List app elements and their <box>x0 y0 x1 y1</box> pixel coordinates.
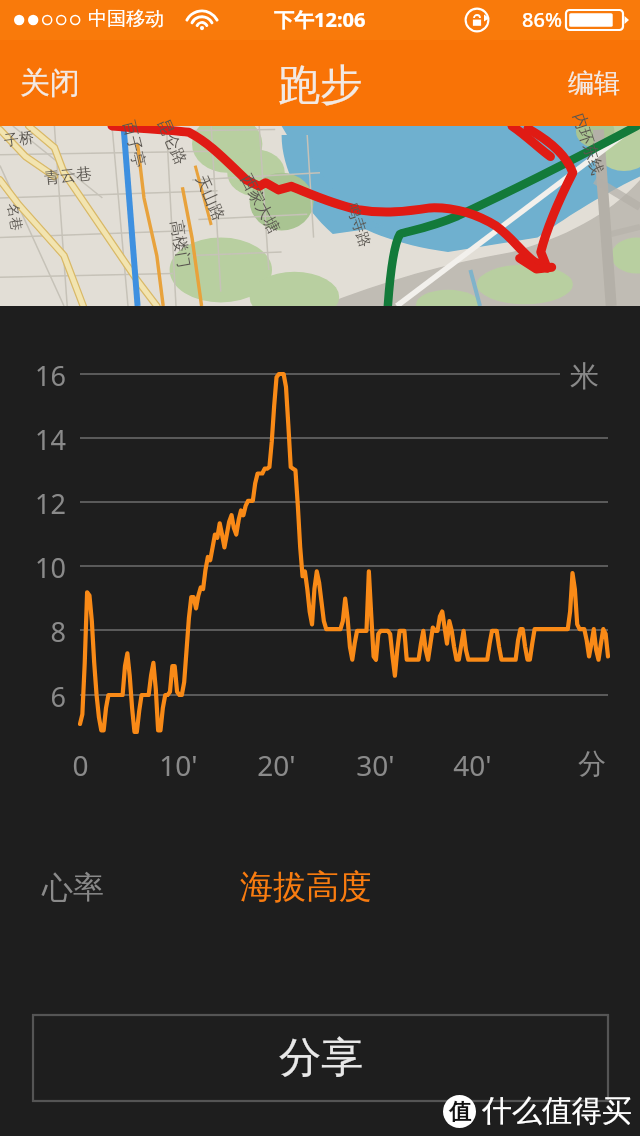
staticText: 0 <box>72 746 89 784</box>
staticText: 百子亭 <box>118 118 149 170</box>
staticText: 高楼门 <box>166 219 194 269</box>
staticText: 关闭 <box>20 64 80 102</box>
staticText: 中国移动 <box>88 7 164 31</box>
staticText: 名巷 <box>3 202 25 232</box>
button[interactable]: 海拔高度 <box>232 860 380 914</box>
staticText: 海拔高度 <box>240 866 372 908</box>
staticText: 西家大塘 <box>236 171 284 237</box>
staticText: 昆仑路 <box>153 116 191 168</box>
button[interactable]: Route map <box>0 126 640 306</box>
staticText: 14 <box>35 421 66 458</box>
staticText: 鸣寺路 <box>342 201 374 250</box>
staticText: 子桥 <box>3 128 35 151</box>
staticText: 下午12:06 <box>274 6 366 33</box>
staticText: 青云巷 <box>43 163 93 188</box>
staticText: 内环东线 <box>569 110 607 177</box>
staticText: 什么值得买 <box>482 1092 632 1130</box>
button[interactable]: 分享 <box>33 1015 608 1101</box>
staticText: 6 <box>50 678 66 715</box>
staticText: 跑步 <box>278 59 362 112</box>
staticText: 40' <box>453 746 492 784</box>
staticText: 12 <box>35 485 66 522</box>
staticText: 天山路 <box>191 172 229 224</box>
staticText: 30' <box>356 746 395 784</box>
staticText: 分享 <box>279 1032 363 1085</box>
staticText: 米 <box>570 358 599 395</box>
staticText: 10 <box>35 549 66 586</box>
staticText: 10' <box>159 746 198 784</box>
staticText: 值 <box>449 1098 471 1126</box>
staticText: 86% <box>522 6 562 33</box>
button[interactable]: 编辑 <box>548 53 640 114</box>
staticText: 分 <box>578 746 606 781</box>
staticText: 20' <box>257 746 296 784</box>
staticText: 16 <box>35 357 66 394</box>
button[interactable]: 关闭 <box>0 50 100 116</box>
staticText: 编辑 <box>568 67 620 100</box>
button[interactable]: 心率 <box>34 862 112 913</box>
staticText: 8 <box>50 613 66 650</box>
staticText: 心率 <box>42 868 104 907</box>
